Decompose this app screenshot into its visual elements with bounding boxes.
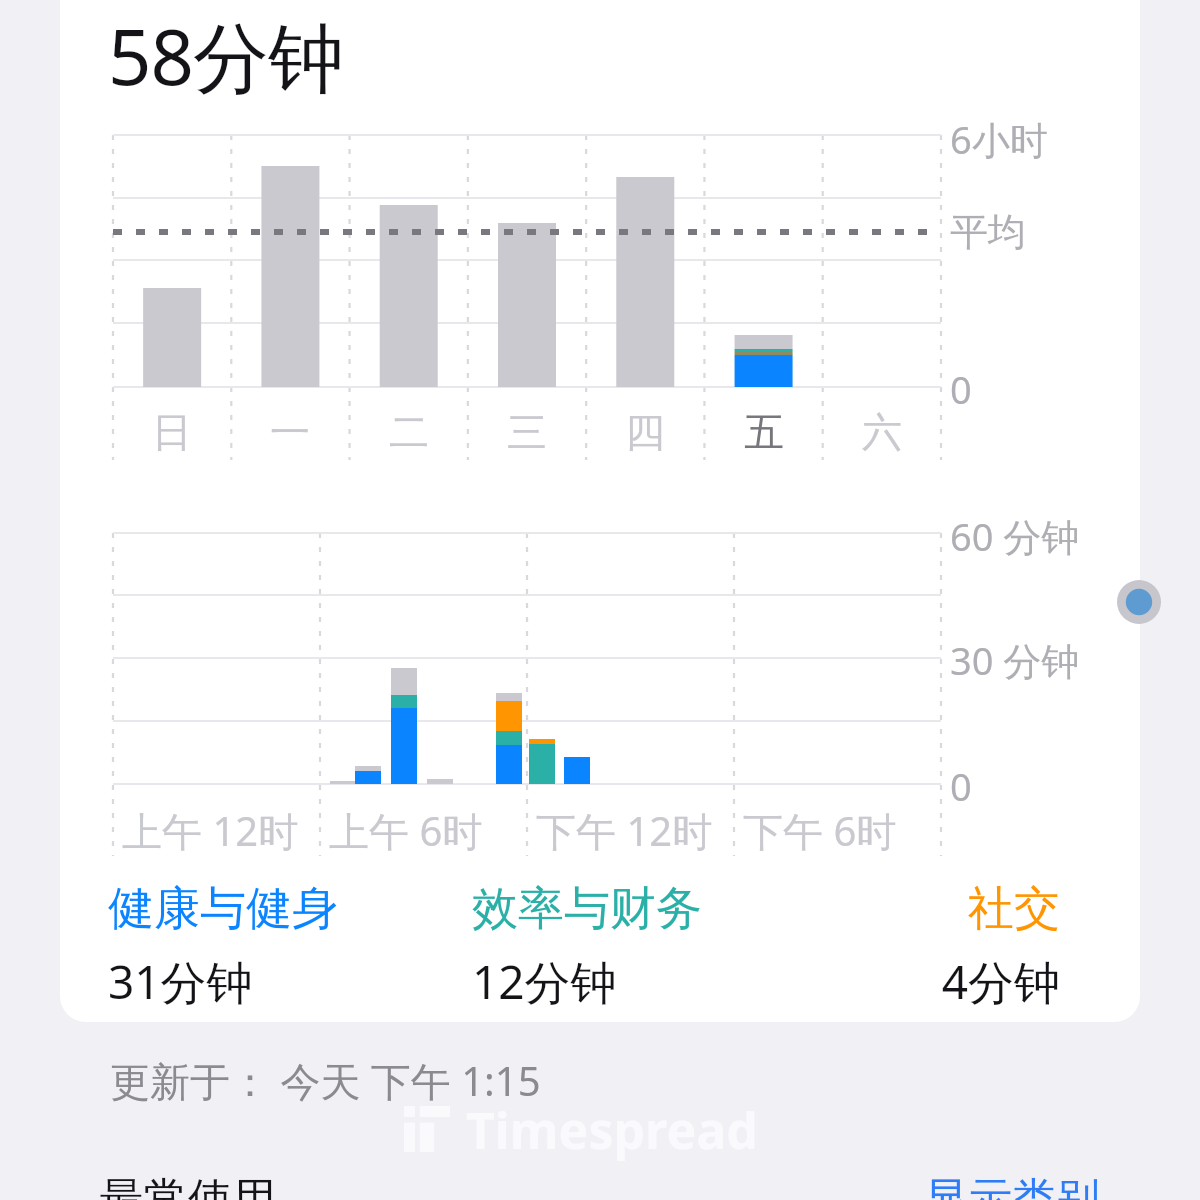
staticText: 下午 12时: [536, 803, 713, 858]
staticText: 四: [625, 407, 665, 457]
button[interactable]: 健康与健身: [108, 880, 472, 1013]
staticText: 6小时: [950, 113, 1048, 165]
staticText: 显示类别: [924, 1172, 1100, 1200]
staticText: 平均: [950, 208, 1026, 256]
button[interactable]: 效率与财务: [472, 880, 835, 1013]
staticText: 效率与财务: [472, 880, 702, 938]
staticText: 31分钟: [108, 950, 253, 1013]
staticText: 4分钟: [941, 950, 1060, 1013]
staticText: 六: [862, 407, 902, 457]
staticText: 0: [950, 760, 972, 812]
staticText: 上午 12时: [122, 803, 299, 858]
staticText: 60 分钟: [950, 510, 1080, 562]
staticText: 最常使用: [100, 1172, 276, 1200]
button[interactable]: 显示类别: [900, 1172, 1100, 1200]
staticText: 二: [389, 407, 429, 457]
staticText: 下午 6时: [743, 803, 897, 858]
button[interactable]: Scroll indicator: [1117, 580, 1161, 624]
staticText: 日: [152, 407, 192, 457]
staticText: 12分钟: [472, 950, 617, 1013]
staticText: 三: [507, 407, 547, 457]
staticText: 健康与健身: [108, 880, 338, 938]
staticText: 0: [950, 363, 972, 415]
staticText: 58分钟: [108, 4, 343, 108]
staticText: 社交: [968, 880, 1060, 938]
staticText: 五: [744, 407, 784, 457]
button[interactable]: 最常使用: [100, 1172, 360, 1200]
staticText: 一: [270, 407, 310, 457]
staticText: Timespread: [466, 1096, 758, 1164]
button[interactable]: 健康与健身: [108, 880, 1060, 1013]
staticText: 更新于： 今天 下午 1:15: [110, 1053, 541, 1108]
staticText: 30 分钟: [950, 634, 1080, 686]
button[interactable]: 社交: [835, 880, 1060, 1013]
staticText: 上午 6时: [329, 803, 483, 858]
